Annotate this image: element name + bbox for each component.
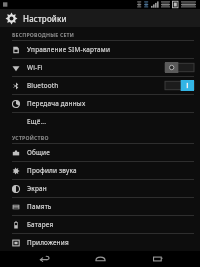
staticText: Память [27, 202, 194, 211]
staticText: Wi-Fi [27, 63, 165, 72]
staticText: Bluetooth [27, 81, 165, 90]
button[interactable]: On [165, 80, 194, 91]
other: Settings [5, 12, 18, 25]
staticText: Общие [27, 148, 194, 157]
staticText: УСТРОЙСТВО [12, 134, 49, 141]
button[interactable]: Ещё... [0, 113, 200, 130]
button[interactable]: Home [87, 251, 113, 267]
button[interactable]: Управление SIM-картами [0, 41, 200, 59]
staticText: Профили звука [27, 166, 194, 175]
staticText: Передача данных [27, 99, 194, 108]
button[interactable]: Off [165, 62, 194, 73]
button[interactable]: Экран [0, 180, 200, 198]
staticText: Приложения [27, 238, 194, 247]
button[interactable]: Recent apps [144, 251, 170, 267]
staticText: Настройки [23, 13, 67, 24]
button[interactable]: Память [0, 198, 200, 216]
staticText: Батарея [27, 220, 194, 229]
button[interactable]: Передача данных [0, 95, 200, 113]
staticText: Ещё... [27, 117, 47, 126]
staticText: Управление SIM-картами [27, 45, 194, 54]
button[interactable]: Приложения [0, 234, 200, 251]
button[interactable]: Батарея [0, 216, 200, 234]
staticText: БЕСПРОВОДНЫЕ СЕТИ [12, 31, 75, 38]
button[interactable]: Settings [0, 9, 200, 27]
button[interactable]: Back [31, 251, 57, 267]
button[interactable]: Общие [0, 144, 200, 162]
button[interactable]: Wi-Fi [0, 59, 200, 77]
button[interactable]: Bluetooth [0, 77, 200, 95]
button[interactable]: Профили звука [0, 162, 200, 180]
staticText: Экран [27, 184, 194, 193]
